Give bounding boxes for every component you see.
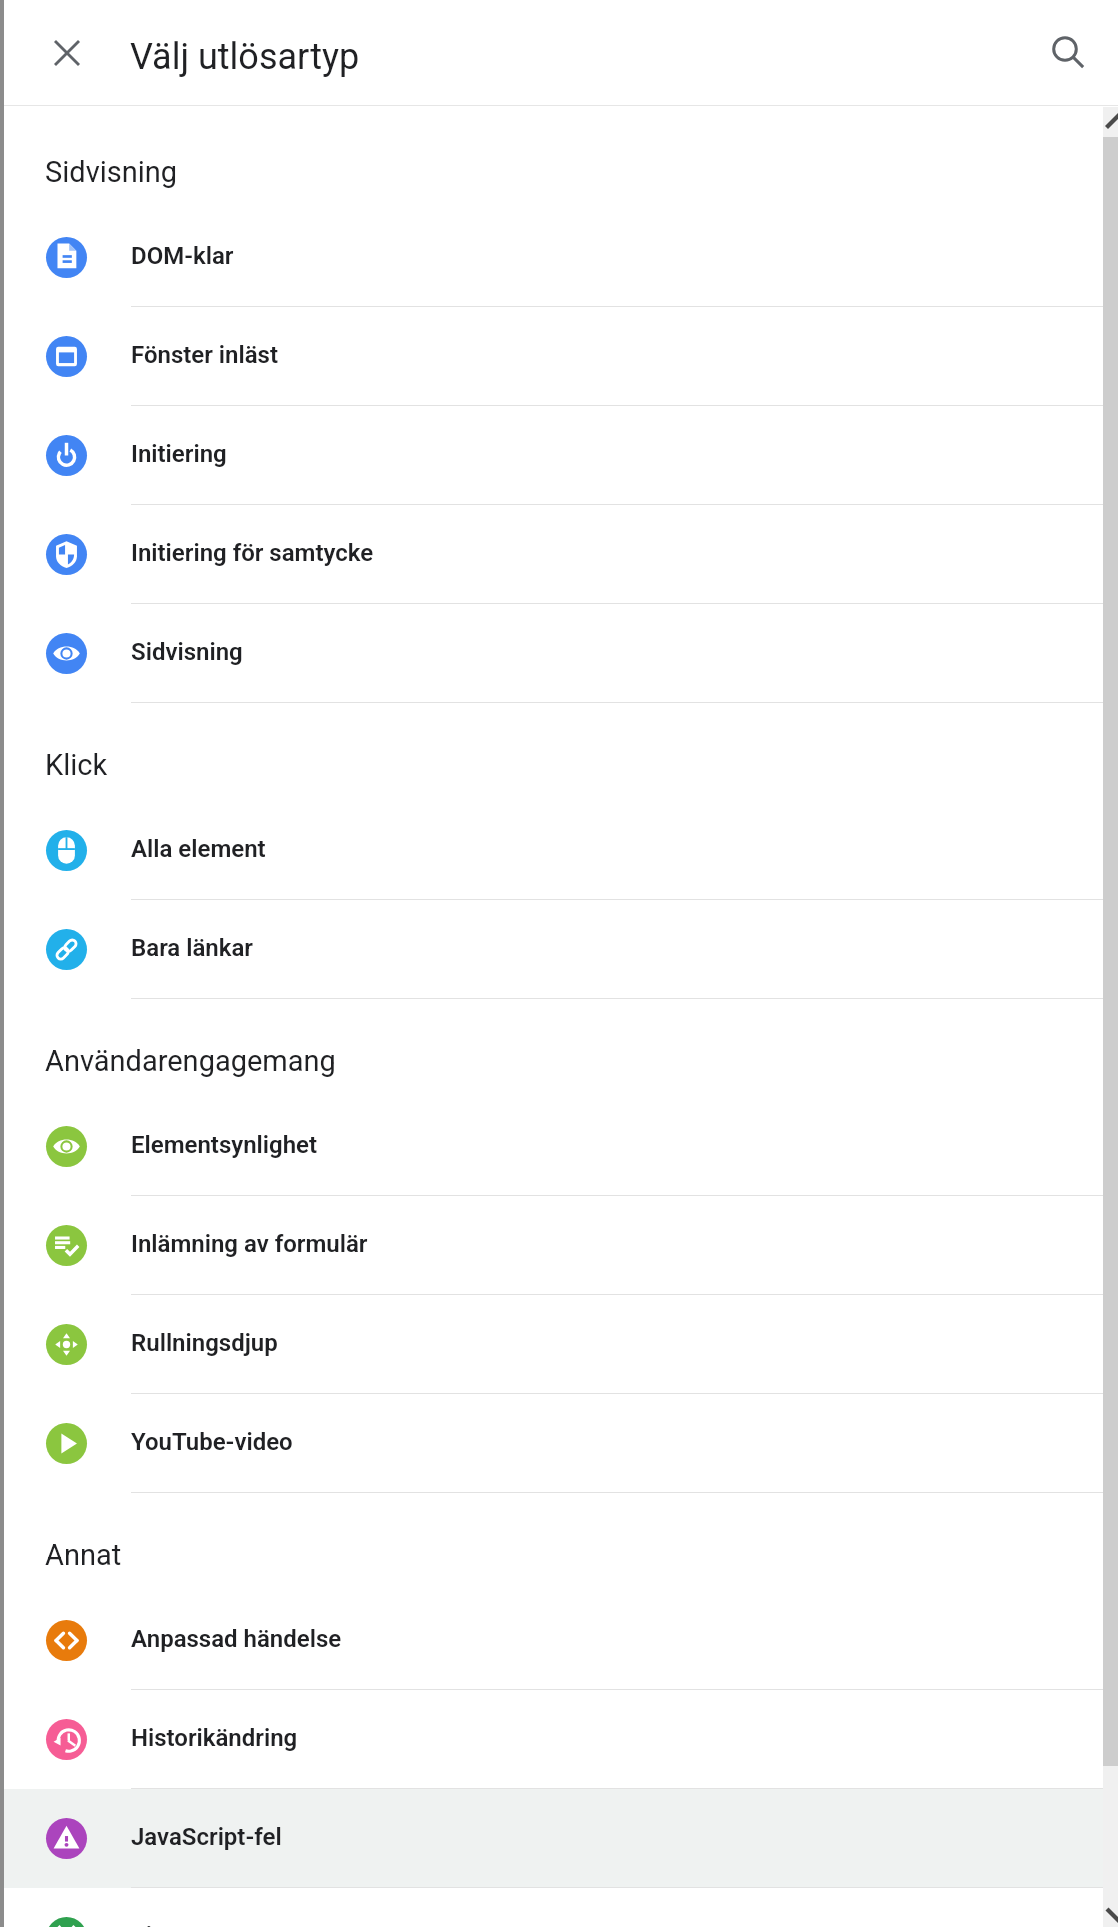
- staticText: Användarengagemang: [45, 1044, 336, 1078]
- staticText: Klick: [45, 748, 108, 782]
- button[interactable]: Alla element: [0, 801, 1118, 900]
- button[interactable]: Timer: [0, 1888, 1118, 1927]
- button[interactable]: YouTube-video: [0, 1394, 1118, 1493]
- button[interactable]: DOM-klar: [0, 208, 1118, 307]
- button[interactable]: Anpassad händelse: [0, 1591, 1118, 1690]
- button[interactable]: Stäng: [43, 29, 91, 77]
- staticText: Initiering för samtycke: [131, 539, 374, 567]
- staticText: YouTube-video: [131, 1428, 293, 1456]
- staticText: Timer: [131, 1922, 195, 1927]
- staticText: Sidvisning: [45, 155, 178, 189]
- button[interactable]: Rullningsdjup: [0, 1295, 1118, 1394]
- staticText: Bara länkar: [131, 934, 253, 962]
- button[interactable]: JavaScript-fel: [0, 1789, 1118, 1888]
- button[interactable]: Bara länkar: [0, 900, 1118, 999]
- button[interactable]: Rulla upp: [1103, 107, 1118, 137]
- button[interactable]: Sidvisning: [0, 604, 1118, 703]
- staticText: DOM-klar: [131, 242, 234, 270]
- button[interactable]: Initiering: [0, 406, 1118, 505]
- staticText: Elementsynlighet: [131, 1131, 318, 1159]
- button[interactable]: Sök: [1041, 23, 1089, 71]
- staticText: Historikändring: [131, 1724, 298, 1752]
- button[interactable]: Rulla ned: [1103, 1897, 1118, 1927]
- button[interactable]: Inlämning av formulär: [0, 1196, 1118, 1295]
- button[interactable]: Fönster inläst: [0, 307, 1118, 406]
- staticText: Fönster inläst: [131, 341, 279, 369]
- button[interactable]: Initiering för samtycke: [0, 505, 1118, 604]
- staticText: Initiering: [131, 440, 227, 468]
- staticText: Rullningsdjup: [131, 1329, 278, 1357]
- staticText: Alla element: [131, 835, 266, 863]
- staticText: Välj utlösartyp: [130, 36, 360, 78]
- staticText: Annat: [45, 1538, 122, 1572]
- staticText: Sidvisning: [131, 638, 243, 666]
- button[interactable]: Historikändring: [0, 1690, 1118, 1789]
- staticText: JavaScript-fel: [131, 1823, 282, 1851]
- staticText: Anpassad händelse: [131, 1625, 342, 1653]
- staticText: Inlämning av formulär: [131, 1230, 368, 1258]
- button[interactable]: Elementsynlighet: [0, 1097, 1118, 1196]
